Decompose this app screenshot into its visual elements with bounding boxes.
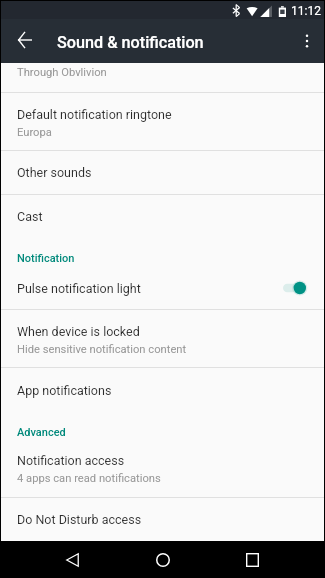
staticText: Sound & notification <box>57 33 204 52</box>
staticText: Advanced <box>17 426 66 439</box>
button[interactable]: More options <box>290 24 324 58</box>
staticText: Notification access <box>17 453 125 468</box>
button[interactable]: When device is locked <box>1 310 324 367</box>
staticText: Through Obvlivion <box>17 66 107 79</box>
staticText: Other sounds <box>17 165 92 180</box>
staticText: When device is locked <box>17 324 140 339</box>
staticText: Cast <box>17 209 43 224</box>
button[interactable]: Back <box>1 19 45 63</box>
staticText: Hide sensitive notification content <box>17 343 187 356</box>
button[interactable]: Do Not Disturb access <box>1 498 324 541</box>
staticText: Notification <box>17 252 75 265</box>
staticText: 11:12 <box>291 4 321 18</box>
button[interactable]: Other sounds <box>1 151 324 194</box>
button[interactable]: Home <box>144 541 181 578</box>
button[interactable]: Cast <box>1 195 324 237</box>
button[interactable]: Pulse notification light <box>1 267 324 309</box>
button[interactable]: Recent apps <box>234 541 271 578</box>
button[interactable]: Back <box>54 541 91 578</box>
button[interactable]: Notification access <box>1 439 324 497</box>
button[interactable]: Through Obvlivion <box>1 63 324 92</box>
staticText: 4 apps can read notifications <box>17 472 161 485</box>
staticText: Default notification ringtone <box>17 107 172 122</box>
button[interactable]: Default notification ringtone <box>1 93 324 150</box>
staticText: App notifications <box>17 383 112 398</box>
staticText: Do Not Disturb access <box>17 512 142 527</box>
staticText: Pulse notification light <box>17 281 283 296</box>
button[interactable]: App notifications <box>1 368 324 412</box>
staticText: Europa <box>17 126 52 139</box>
